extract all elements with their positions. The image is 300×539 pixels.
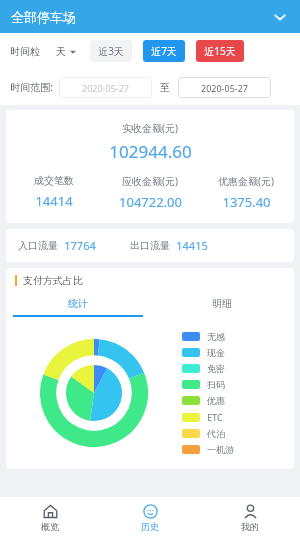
staticText: 概览 — [41, 521, 59, 532]
button[interactable]: 一机游 — [182, 444, 234, 455]
button[interactable]: 优惠 — [182, 395, 225, 406]
staticText: 至 — [160, 81, 170, 94]
staticText: 近7天 — [151, 44, 177, 58]
button[interactable]: 无感 — [182, 331, 225, 342]
button[interactable]: Expand parking lot selector — [270, 7, 290, 27]
button[interactable]: 近3天 — [90, 40, 132, 62]
button[interactable]: 近7天 — [143, 40, 185, 62]
staticText: 代泊 — [207, 428, 225, 439]
staticText: 扫码 — [207, 379, 225, 390]
staticText: 时间范围: — [10, 80, 53, 94]
button[interactable]: ETC — [182, 411, 223, 423]
button[interactable]: 统计 — [6, 292, 150, 317]
staticText: 时间粒 — [10, 45, 40, 58]
staticText: 全部停车场 — [11, 9, 76, 25]
staticText: 104722.00 — [119, 193, 182, 211]
staticText: 实收金额(元) — [122, 121, 178, 135]
staticText: 现金 — [207, 347, 225, 358]
button[interactable]: 2020-05-27 — [178, 77, 271, 98]
staticText: 入口流量 — [18, 239, 58, 252]
staticText: 1375.40 — [222, 193, 271, 211]
staticText: 近3天 — [98, 44, 124, 58]
staticText: 17764 — [64, 238, 96, 253]
staticText: 明细 — [212, 297, 232, 310]
staticText: 统计 — [68, 297, 88, 310]
staticText: 我的 — [241, 521, 259, 532]
button[interactable]: 应收金额(元) — [102, 174, 198, 211]
button[interactable]: 成交笔数 — [6, 174, 102, 210]
button[interactable]: 扫码 — [182, 379, 225, 390]
button[interactable]: 明细 — [150, 292, 294, 317]
staticText: 出口流量 — [130, 239, 170, 252]
button[interactable]: 优惠金额(元) — [198, 174, 294, 211]
staticText: 14415 — [176, 238, 208, 253]
staticText: 优惠 — [207, 395, 225, 406]
button[interactable]: 全部停车场 — [0, 0, 300, 33]
staticText: 近15天 — [204, 44, 236, 58]
staticText: 102944.60 — [109, 140, 192, 163]
staticText: ETC — [207, 411, 223, 423]
staticText: 一机游 — [207, 444, 234, 455]
button[interactable]: 代泊 — [182, 428, 225, 439]
staticText: 优惠金额(元) — [218, 174, 274, 188]
button[interactable]: 历史 — [100, 497, 200, 539]
staticText: 支付方式占比 — [23, 274, 83, 287]
button[interactable]: 2020-05-27 — [59, 77, 152, 98]
button[interactable]: 入口流量 — [6, 229, 294, 262]
button[interactable]: 免密 — [182, 363, 225, 374]
button[interactable]: 我的 — [200, 497, 300, 539]
button[interactable]: 近15天 — [196, 40, 244, 62]
button[interactable]: 现金 — [182, 347, 225, 358]
staticText: 免密 — [207, 363, 225, 374]
button[interactable]: 天 — [56, 45, 76, 58]
staticText: 历史 — [141, 521, 159, 532]
button[interactable]: 概览 — [0, 497, 100, 539]
staticText: 天 — [56, 45, 66, 58]
staticText: 14414 — [35, 192, 73, 210]
staticText: 应收金额(元) — [122, 174, 178, 188]
staticText: 成交笔数 — [34, 174, 74, 187]
staticText: 无感 — [207, 331, 225, 342]
staticText: 2020-05-27 — [201, 82, 248, 94]
staticText: 2020-05-27 — [82, 82, 129, 94]
